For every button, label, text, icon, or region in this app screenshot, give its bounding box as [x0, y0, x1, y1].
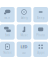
button[interactable]: Wi-Fi [0, 7, 15, 22]
staticText: Wi-Fi [4, 16, 10, 20]
staticText: LED [22, 51, 26, 54]
button[interactable]: Music [17, 24, 31, 40]
button[interactable]: Photo [33, 24, 48, 40]
staticText: Music [20, 33, 27, 37]
staticText: Apps [37, 51, 44, 54]
button[interactable]: Stack [0, 24, 15, 40]
button[interactable]: LED [17, 42, 31, 57]
button[interactable]: Notes [0, 42, 15, 57]
button[interactable]: Safety [17, 7, 31, 22]
staticText: Notes [3, 51, 11, 54]
button[interactable]: Apps [33, 42, 48, 57]
staticText: Sleep [37, 16, 45, 20]
staticText: Photo [36, 33, 45, 37]
staticText: Safety [20, 16, 27, 20]
staticText: LED [20, 44, 27, 49]
button[interactable]: Sleep [33, 7, 48, 22]
staticText: Stack [5, 33, 10, 37]
